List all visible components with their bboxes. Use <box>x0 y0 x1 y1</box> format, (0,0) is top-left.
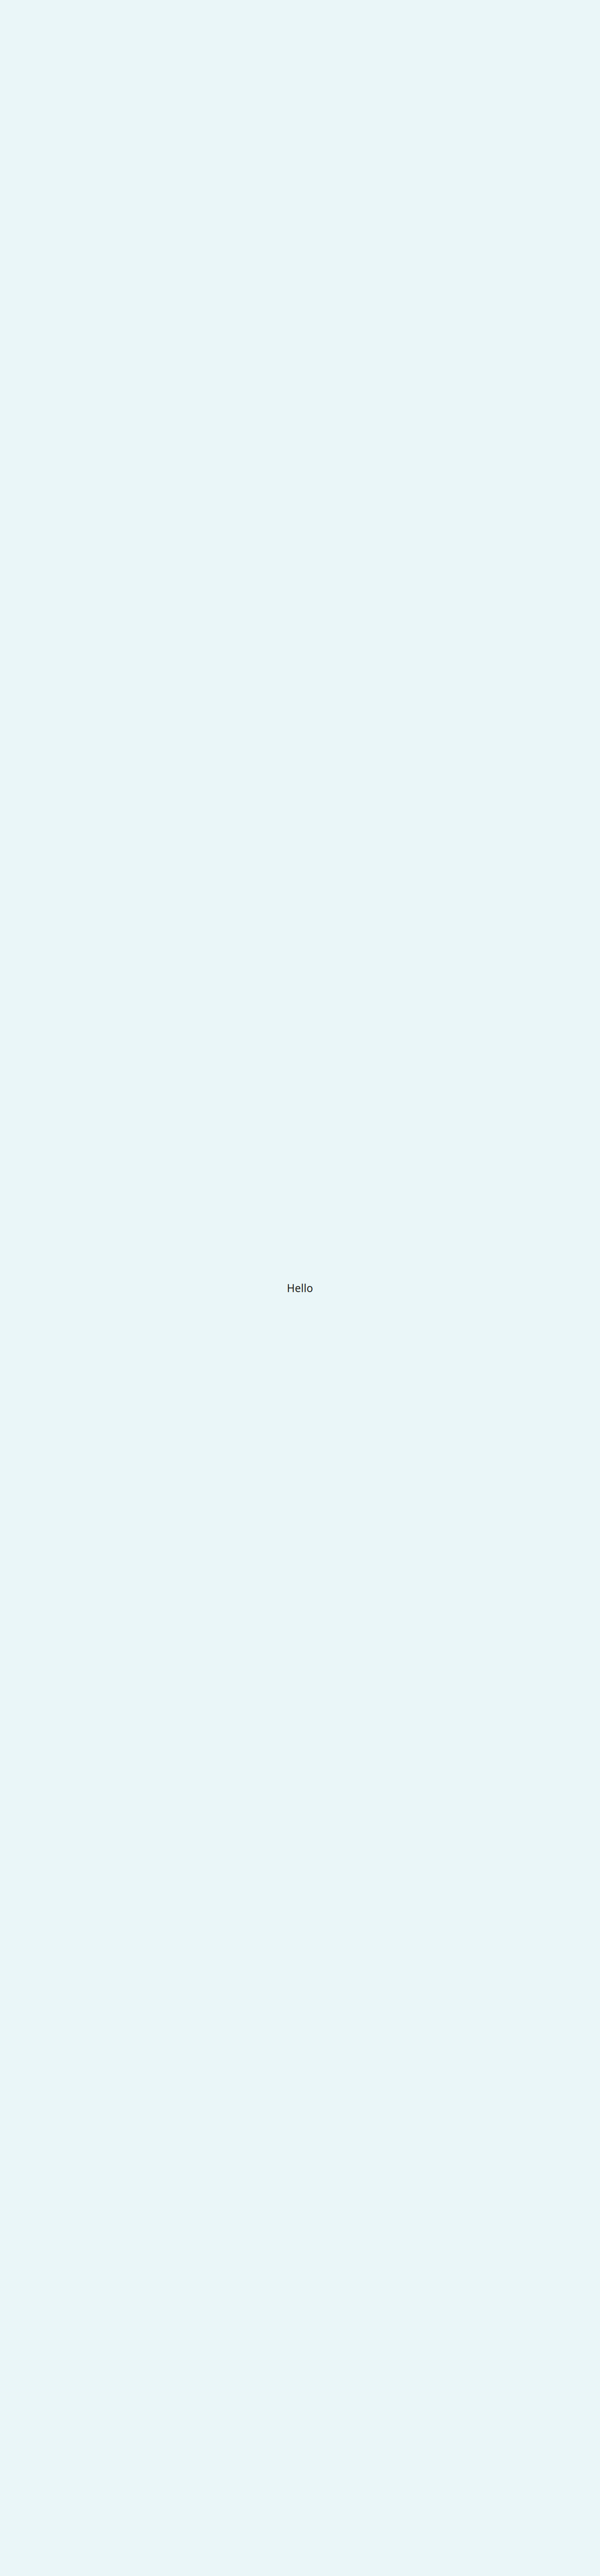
staticText: Hello <box>287 1281 313 1295</box>
